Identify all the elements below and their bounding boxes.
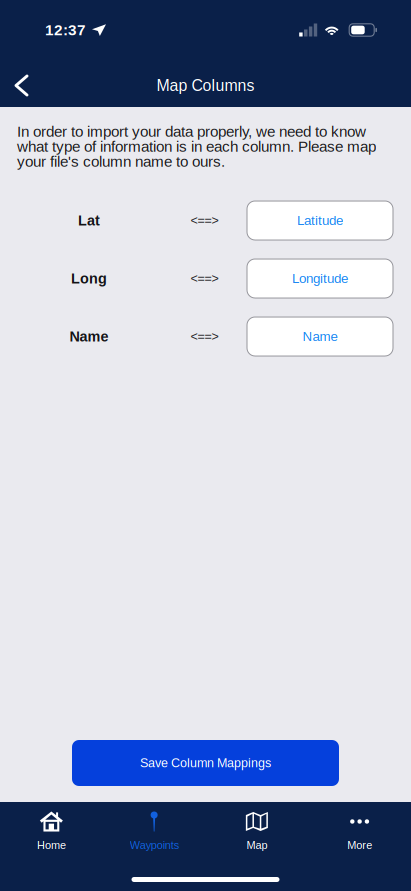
button[interactable]: Longitude	[247, 259, 393, 298]
staticText: Waypoints	[130, 839, 179, 851]
staticText: Save Column Mappings	[140, 756, 271, 770]
staticText: <==>	[190, 213, 218, 227]
staticText: Map Columns	[156, 77, 254, 94]
staticText: Home	[37, 839, 66, 851]
staticText: <==>	[190, 329, 218, 343]
staticText: <==>	[190, 271, 218, 285]
staticText: Map	[246, 839, 267, 851]
staticText: Lat	[78, 212, 100, 229]
staticText: Name	[69, 328, 108, 345]
button[interactable]: Home	[0, 811, 103, 858]
staticText: Name	[302, 329, 337, 344]
staticText: Long	[71, 270, 107, 287]
button[interactable]: Back	[0, 54, 47, 107]
staticText: Longitude	[292, 271, 348, 286]
staticText: what type of information is in each colu…	[17, 138, 376, 155]
staticText: your file's column name to ours.	[17, 153, 225, 170]
staticText: 12:37	[45, 21, 86, 38]
button[interactable]: Name	[247, 317, 393, 356]
button[interactable]: Map	[205, 811, 308, 858]
staticText: In order to import your data properly, w…	[17, 123, 366, 140]
button[interactable]: Latitude	[247, 201, 393, 240]
staticText: Latitude	[297, 213, 343, 228]
staticText: More	[347, 839, 372, 851]
button[interactable]: Save Column Mappings	[72, 740, 339, 786]
button[interactable]: Waypoints	[103, 811, 206, 858]
button[interactable]: More	[308, 811, 411, 858]
